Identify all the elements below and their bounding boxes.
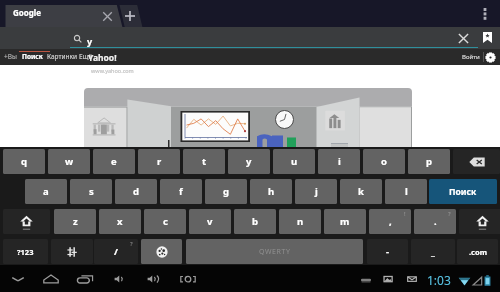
button[interactable]: - [367, 239, 408, 264]
staticText: v [207, 215, 213, 228]
button[interactable]: v [189, 209, 231, 234]
staticText: j [315, 185, 318, 198]
button[interactable]: SHIFT [3, 209, 50, 234]
staticText: u [291, 155, 298, 168]
staticText: QWERTY [259, 247, 291, 257]
staticText: w [65, 155, 74, 168]
button[interactable]: More options [477, 4, 493, 20]
staticText: q [21, 155, 28, 168]
button[interactable]: _ [411, 239, 455, 264]
button[interactable]: k [340, 179, 382, 204]
button[interactable]: h [250, 179, 292, 204]
button[interactable]: Войти [462, 53, 480, 61]
staticText: o [381, 155, 387, 168]
staticText: y [87, 35, 93, 47]
staticText: ? [448, 210, 451, 218]
staticText: , [389, 215, 392, 228]
button[interactable]: u [273, 149, 315, 174]
button[interactable]: QWERTY [186, 239, 363, 264]
staticText: s [89, 185, 94, 198]
staticText: .com [469, 247, 487, 257]
button[interactable]: Volume down [111, 270, 129, 288]
button[interactable]: Screenshot [179, 270, 197, 288]
staticText: _ [431, 245, 435, 258]
button[interactable]: x [99, 209, 141, 234]
staticText: ? [130, 240, 133, 248]
button[interactable]: z [54, 209, 96, 234]
staticText: +Вы [4, 52, 17, 61]
staticText: f [179, 185, 183, 198]
button[interactable]: Email [403, 270, 421, 288]
staticText: k [358, 185, 364, 198]
button[interactable]: o [363, 149, 405, 174]
button[interactable]: . [414, 209, 456, 234]
button[interactable]: Home [42, 270, 60, 288]
button[interactable]: p [408, 149, 450, 174]
button[interactable]: Hide keyboard [9, 270, 27, 288]
button[interactable]: m [324, 209, 366, 234]
button[interactable]: Keyboard [357, 270, 375, 288]
button[interactable]: r [138, 149, 180, 174]
staticText: Ещё [79, 52, 93, 61]
button[interactable]: n [279, 209, 321, 234]
button[interactable]: BKSP [453, 149, 500, 174]
button[interactable]: Clear [455, 30, 472, 47]
staticText: e [111, 155, 117, 168]
button[interactable]: Close tab [99, 8, 116, 25]
button[interactable]: +Вы [4, 52, 17, 61]
button[interactable]: Картинки [47, 52, 78, 61]
staticText: Картинки [47, 52, 78, 61]
button[interactable]: s [70, 179, 112, 204]
button[interactable]: q [3, 149, 45, 174]
staticText: Yahoo! [88, 52, 117, 64]
button[interactable]: a [25, 179, 67, 204]
button[interactable]: SHIFT [459, 209, 500, 234]
button[interactable]: w [48, 149, 90, 174]
staticText: b [252, 215, 259, 228]
button[interactable]: Ещё [79, 52, 93, 61]
button[interactable]: Volume up [144, 270, 162, 288]
button[interactable]: f [160, 179, 202, 204]
button[interactable]: Поиск [22, 52, 43, 61]
staticText: ! [404, 210, 406, 218]
button[interactable]: SETT [51, 239, 93, 264]
button[interactable]: Google [5, 0, 118, 27]
button[interactable]: d [115, 179, 157, 204]
staticText: y [246, 155, 252, 168]
button[interactable]: b [234, 209, 276, 234]
button[interactable]: c [144, 209, 186, 234]
staticText: z [73, 215, 78, 228]
button[interactable]: / [94, 239, 138, 264]
staticText: m [340, 215, 350, 228]
button[interactable]: ?123 [3, 239, 48, 264]
button[interactable]: e [93, 149, 135, 174]
button[interactable]: i [318, 149, 360, 174]
staticText: - [386, 245, 390, 258]
staticText: Войти [462, 53, 480, 61]
staticText: Google [13, 7, 42, 18]
staticText: d [133, 185, 140, 198]
staticText: l [405, 185, 408, 198]
staticText: . [434, 215, 437, 228]
button[interactable]: Поиск [429, 179, 497, 204]
staticText: n [297, 215, 304, 228]
staticText: t [202, 155, 207, 168]
staticText: a [43, 185, 49, 198]
button[interactable]: GLOBE [141, 239, 182, 264]
button[interactable]: New tab [120, 7, 140, 25]
button[interactable]: , [369, 209, 411, 234]
staticText: / [114, 245, 118, 258]
button[interactable]: Bookmark [483, 32, 492, 43]
button[interactable]: y [228, 149, 270, 174]
staticText: ?123 [17, 247, 34, 257]
staticText: x [117, 215, 123, 228]
button[interactable]: j [295, 179, 337, 204]
button[interactable]: .com [457, 239, 498, 264]
staticText: Поиск [449, 186, 477, 198]
button[interactable]: Recent apps [76, 270, 94, 288]
button[interactable]: Settings [485, 52, 496, 63]
button[interactable]: Screenshot saved [379, 270, 397, 288]
button[interactable]: t [183, 149, 225, 174]
button[interactable]: g [205, 179, 247, 204]
button[interactable]: l [385, 179, 427, 204]
